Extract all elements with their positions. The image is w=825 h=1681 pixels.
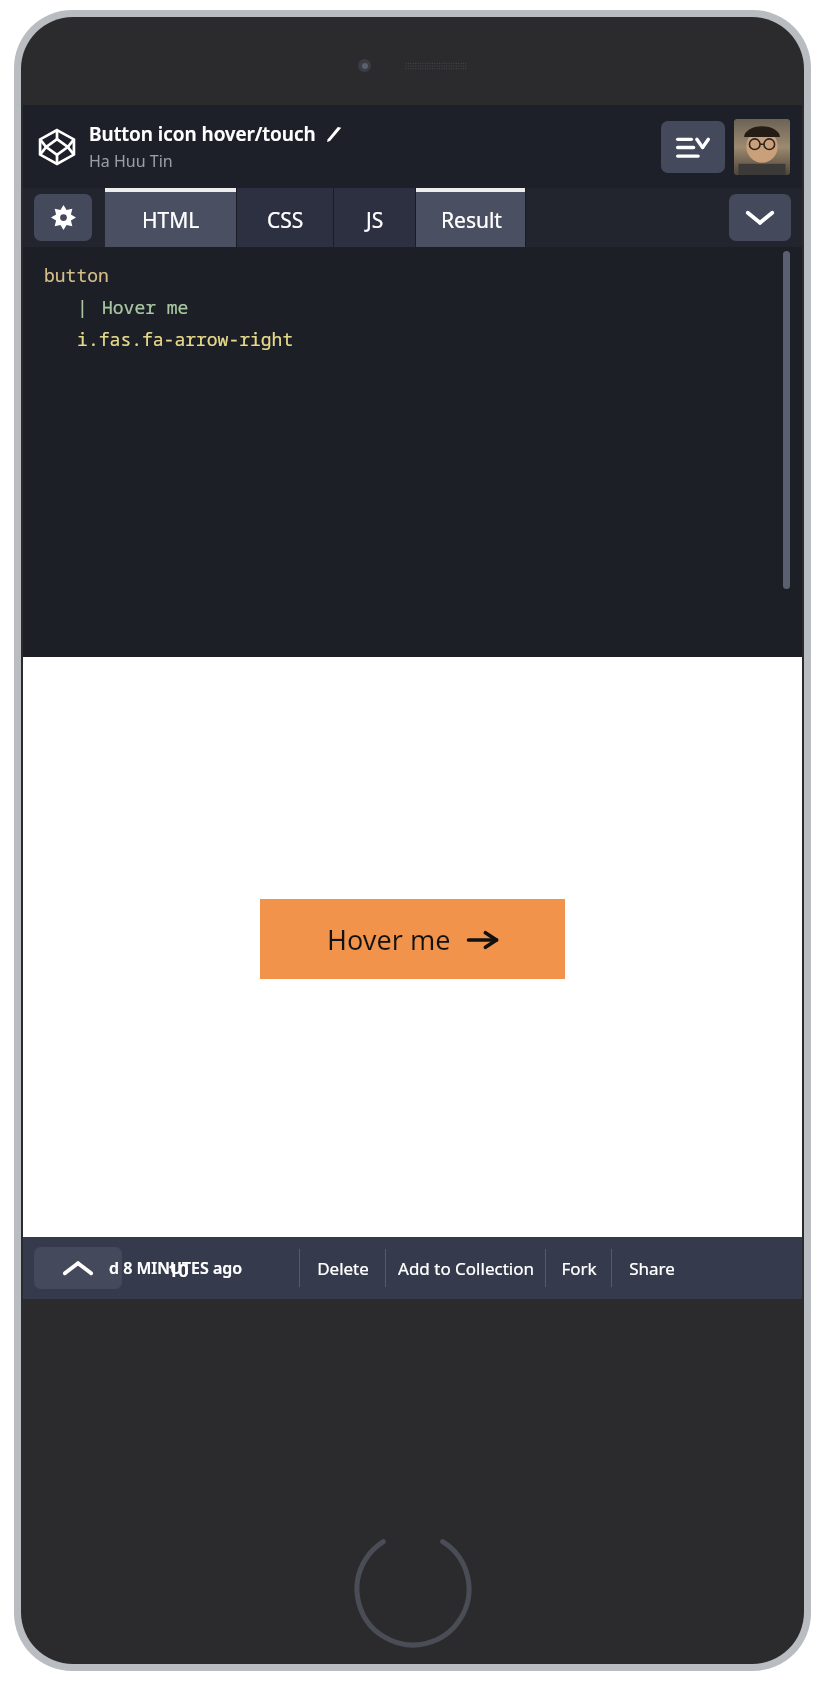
staticText: .fas.fa-arrow-right bbox=[88, 327, 294, 352]
button[interactable]: Hover me bbox=[260, 899, 565, 979]
staticText: 10 bbox=[168, 1258, 189, 1283]
staticText: JS bbox=[366, 206, 384, 235]
button[interactable]: Edit title bbox=[325, 125, 343, 143]
staticText: button bbox=[44, 263, 109, 288]
button[interactable]: Expand bbox=[729, 194, 791, 241]
button[interactable]: Pen actions bbox=[661, 121, 725, 173]
staticText: Hover me bbox=[327, 921, 451, 958]
staticText: i bbox=[77, 327, 88, 352]
staticText: Button icon hover/touch bbox=[89, 121, 316, 147]
button[interactable]: Share bbox=[612, 1237, 692, 1299]
button[interactable]: Collapse bbox=[34, 1247, 122, 1289]
button[interactable]: Profile bbox=[734, 119, 790, 175]
button[interactable]: Add to Collection bbox=[386, 1237, 546, 1299]
staticText: Delete bbox=[317, 1257, 369, 1280]
button[interactable]: HTML bbox=[105, 188, 237, 247]
staticText: HTML bbox=[142, 206, 200, 235]
staticText: Add to Collection bbox=[398, 1257, 534, 1280]
button[interactable]: Fork bbox=[546, 1237, 612, 1299]
staticText: Hover me bbox=[102, 295, 189, 320]
button[interactable]: CSS bbox=[237, 188, 334, 247]
button[interactable]: Result bbox=[416, 188, 526, 247]
staticText: Result bbox=[441, 206, 502, 235]
button[interactable]: Delete bbox=[300, 1237, 386, 1299]
button[interactable]: JS bbox=[334, 188, 416, 247]
button[interactable]: Settings bbox=[34, 194, 92, 241]
button[interactable]: CodePen home bbox=[35, 125, 79, 169]
staticText: Share bbox=[629, 1257, 675, 1280]
staticText: d 8 MINUTES ago bbox=[109, 1257, 243, 1279]
staticText: | bbox=[77, 295, 88, 320]
staticText: Ha Huu Tin bbox=[89, 150, 173, 172]
staticText: Fork bbox=[561, 1257, 597, 1280]
staticText: CSS bbox=[267, 206, 304, 235]
